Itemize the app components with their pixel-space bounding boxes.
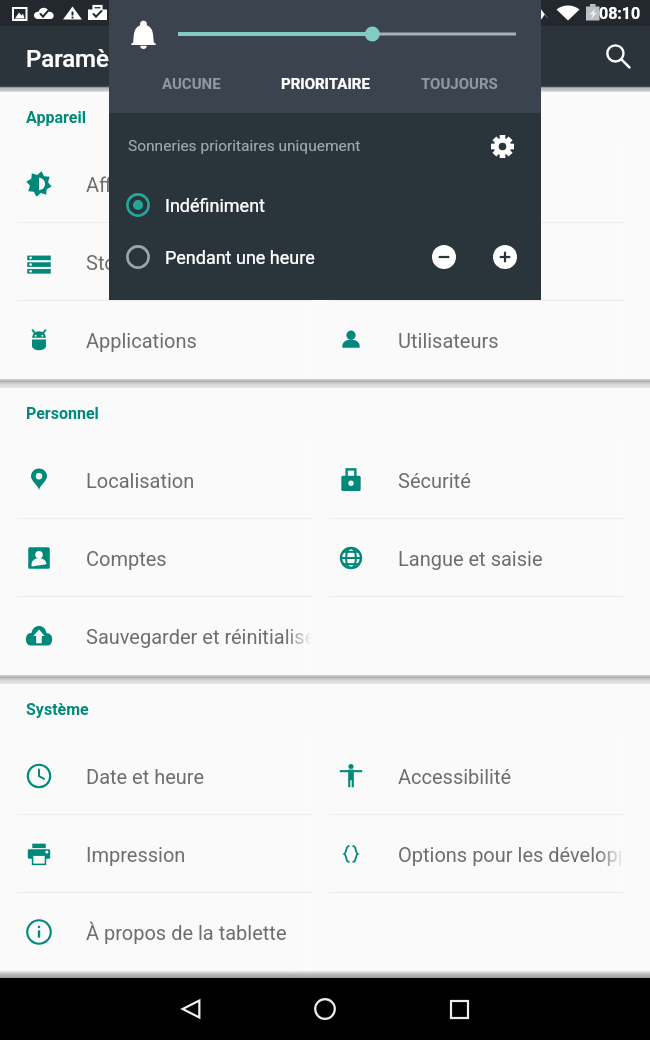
button[interactable]: Options pour les développeurs bbox=[312, 815, 624, 893]
button[interactable]: Diminuer bbox=[422, 235, 466, 279]
staticText: AUCUNE bbox=[162, 75, 221, 93]
staticText: Options pour les développeurs bbox=[398, 843, 624, 866]
button[interactable]: Paramètres bbox=[482, 126, 522, 166]
button[interactable]: Comptes bbox=[0, 519, 312, 597]
button[interactable]: Stockage bbox=[0, 223, 312, 301]
staticText: Sécurité bbox=[398, 469, 471, 492]
button[interactable]: Applications bbox=[0, 301, 312, 379]
staticText: Date et heure bbox=[86, 765, 205, 788]
staticText: Utilisateurs bbox=[398, 329, 499, 352]
staticText: Son bbox=[398, 251, 433, 274]
staticText: Système bbox=[26, 700, 89, 719]
staticText: Impression bbox=[86, 843, 186, 866]
staticText: Localisation bbox=[86, 469, 195, 492]
staticText: Paramètres bbox=[26, 45, 151, 73]
staticText: Pendant une heure bbox=[165, 247, 422, 268]
button[interactable]: TOUJOURS bbox=[392, 57, 526, 111]
button[interactable]: AUCUNE bbox=[124, 57, 258, 111]
button[interactable]: Accueil bbox=[299, 983, 351, 1035]
button[interactable]: Notifications bbox=[312, 145, 624, 223]
button[interactable]: Accessibilité bbox=[312, 737, 624, 815]
staticText: Langue et saisie bbox=[398, 547, 543, 570]
button[interactable]: Augmenter bbox=[483, 235, 527, 279]
button[interactable]: Sécurité bbox=[312, 441, 624, 519]
button[interactable]: Pendant une heure bbox=[109, 231, 541, 283]
staticText: 08:10 bbox=[599, 4, 641, 23]
staticText: TOUJOURS bbox=[421, 75, 498, 93]
staticText: Indéfiniment bbox=[165, 195, 541, 216]
button[interactable]: Son bbox=[312, 223, 624, 301]
button[interactable]: Indéfiniment bbox=[109, 179, 541, 231]
button[interactable]: Rechercher bbox=[594, 32, 642, 80]
button[interactable]: Applications récentes bbox=[433, 983, 485, 1035]
staticText: Stockage bbox=[86, 251, 169, 274]
button[interactable]: À propos de la tablette bbox=[0, 893, 312, 971]
staticText: Applications bbox=[86, 329, 197, 352]
button[interactable]: Langue et saisie bbox=[312, 519, 624, 597]
button[interactable]: Date et heure bbox=[0, 737, 312, 815]
staticText: Affichage bbox=[86, 173, 171, 196]
button[interactable]: Retour bbox=[165, 983, 217, 1035]
button[interactable]: Affichage bbox=[0, 145, 312, 223]
staticText: Personnel bbox=[26, 404, 99, 423]
staticText: Appareil bbox=[26, 108, 86, 127]
staticText: Sonneries prioritaires uniquement bbox=[128, 137, 482, 155]
button[interactable]: PRIORITAIRE bbox=[258, 57, 392, 111]
staticText: Comptes bbox=[86, 547, 167, 570]
staticText: PRIORITAIRE bbox=[281, 75, 370, 93]
staticText: À propos de la tablette bbox=[86, 921, 287, 944]
staticText: Accessibilité bbox=[398, 765, 512, 788]
button[interactable]: Impression bbox=[0, 815, 312, 893]
button[interactable]: Localisation bbox=[0, 441, 312, 519]
button[interactable]: Utilisateurs bbox=[312, 301, 624, 379]
staticText: Sauvegarder et réinitialiser bbox=[86, 625, 312, 648]
button[interactable]: Sauvegarder et réinitialiser bbox=[0, 597, 312, 675]
